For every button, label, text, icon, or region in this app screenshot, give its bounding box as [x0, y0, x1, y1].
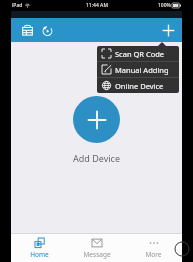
staticText: Add Device — [73, 152, 120, 164]
button[interactable]: Home — [11, 234, 68, 262]
staticText: Message — [83, 250, 111, 259]
staticText: Online Device — [115, 81, 164, 91]
button[interactable]: Devices — [18, 21, 36, 39]
button[interactable]: History — [38, 21, 56, 39]
button[interactable]: Add — [158, 20, 178, 40]
button[interactable]: More — [125, 234, 182, 262]
button[interactable]: Add Device — [73, 96, 120, 143]
button[interactable]: Manual Adding — [97, 62, 179, 77]
button[interactable]: Scan QR Code — [97, 46, 179, 61]
staticText: iPad — [12, 2, 23, 9]
staticText: 100% — [158, 2, 171, 9]
staticText: Manual Adding — [115, 65, 169, 75]
staticText: Scan QR Code — [115, 49, 165, 59]
staticText: Home — [30, 250, 49, 259]
button[interactable]: Message — [68, 234, 125, 262]
staticText: More — [145, 250, 162, 259]
button[interactable]: Online Device — [97, 78, 179, 93]
staticText: 11:44 AM — [86, 2, 108, 9]
